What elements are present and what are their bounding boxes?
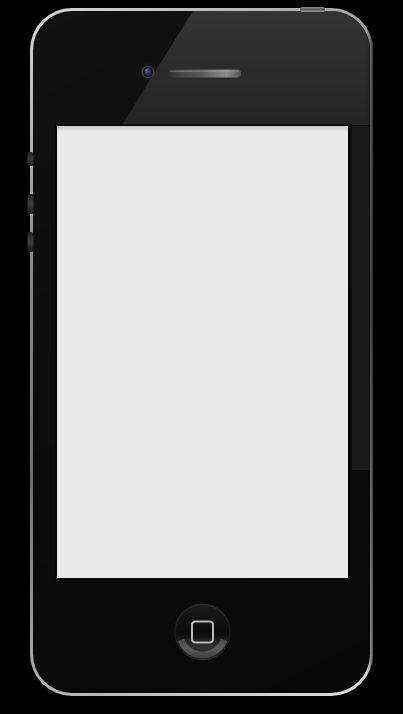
button[interactable]: Phone device mockup	[0, 0, 403, 714]
